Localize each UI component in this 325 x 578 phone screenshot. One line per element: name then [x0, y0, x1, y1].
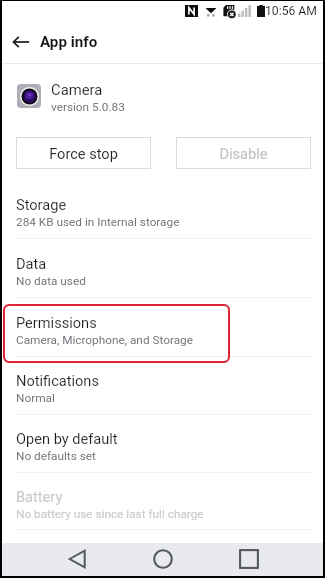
staticText: No battery use since last full charge	[16, 507, 204, 521]
staticText: Force stop	[49, 145, 118, 162]
button[interactable]: Recent apps	[238, 548, 260, 570]
staticText: Data	[16, 255, 47, 272]
staticText: Normal	[16, 391, 55, 405]
staticText: Notifications	[16, 372, 99, 389]
staticText: Camera, Microphone, and Storage	[16, 333, 193, 347]
staticText: No defaults set	[16, 449, 96, 463]
button[interactable]: Open by default	[2, 415, 323, 473]
button[interactable]: Disable	[176, 137, 311, 169]
staticText: App info	[40, 33, 98, 51]
button[interactable]: Back	[66, 548, 88, 570]
staticText: Open by default	[16, 430, 118, 447]
button[interactable]: Storage	[2, 180, 323, 239]
staticText: 284 KB used in Internal storage	[16, 215, 180, 229]
staticText: Permissions	[16, 314, 97, 331]
button[interactable]: Battery	[2, 473, 323, 530]
staticText: Camera	[51, 81, 103, 98]
button[interactable]: Force stop	[16, 137, 151, 169]
button[interactable]: Permissions	[2, 298, 323, 357]
button[interactable]: Back	[2, 23, 40, 61]
staticText: Disable	[219, 145, 268, 162]
button[interactable]: Notifications	[2, 357, 323, 415]
staticText: version 5.0.83	[51, 100, 125, 114]
staticText: 10:56 AM	[265, 4, 317, 18]
button[interactable]: Home	[152, 548, 174, 570]
staticText: No data used	[16, 274, 86, 288]
staticText: Battery	[16, 488, 63, 505]
button[interactable]: Data	[2, 239, 323, 298]
staticText: Storage	[16, 196, 67, 213]
